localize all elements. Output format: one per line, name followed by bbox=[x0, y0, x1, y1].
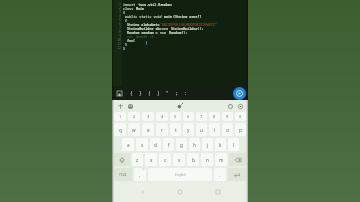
button[interactable]: Voice input bbox=[116, 102, 124, 110]
staticText: 3 bbox=[147, 114, 150, 119]
staticText: p bbox=[239, 127, 242, 133]
staticText: i bbox=[214, 127, 216, 133]
button[interactable]: ?123 bbox=[114, 168, 132, 181]
button[interactable]: : bbox=[181, 88, 190, 98]
staticText: { bbox=[125, 18, 128, 22]
button[interactable]: , bbox=[134, 168, 146, 181]
staticText: g bbox=[180, 142, 183, 148]
button[interactable]: e bbox=[142, 123, 154, 136]
button[interactable]: 3 bbox=[142, 112, 154, 121]
staticText: ; bbox=[175, 90, 178, 96]
button[interactable]: x bbox=[145, 153, 157, 166]
button[interactable]: 2 bbox=[128, 112, 140, 121]
button[interactable]: Enter bbox=[228, 168, 246, 181]
button[interactable]: h bbox=[189, 138, 200, 151]
staticText: Random(); bbox=[169, 30, 188, 34]
staticText: 4 bbox=[119, 14, 121, 18]
button[interactable]: . bbox=[214, 168, 226, 181]
staticText: 1 bbox=[119, 2, 121, 6]
staticText: r bbox=[161, 127, 163, 133]
button[interactable]: d bbox=[150, 138, 161, 151]
staticText: ☺ bbox=[142, 168, 145, 171]
button[interactable]: c bbox=[159, 153, 171, 166]
button[interactable]: } bbox=[136, 88, 145, 98]
staticText: ) bbox=[157, 90, 160, 96]
button[interactable]: q bbox=[114, 123, 126, 136]
button[interactable]: m bbox=[215, 153, 227, 166]
button[interactable]: { bbox=[127, 88, 136, 98]
button[interactable]: a bbox=[122, 138, 134, 151]
staticText: { bbox=[130, 90, 133, 96]
staticText: j bbox=[207, 142, 209, 148]
staticText: a bbox=[127, 142, 130, 148]
staticText: StringBuilder sb= bbox=[127, 26, 162, 30]
button[interactable]: k bbox=[215, 138, 226, 151]
button[interactable]: Run bbox=[233, 87, 246, 100]
staticText: main bbox=[164, 14, 173, 18]
button[interactable]: n bbox=[201, 153, 213, 166]
staticText: 4 bbox=[161, 114, 164, 119]
button[interactable]: 7 bbox=[196, 112, 207, 121]
button[interactable]: Backspace bbox=[229, 153, 246, 166]
staticText: 8 bbox=[213, 114, 216, 119]
button[interactable]: English bbox=[148, 168, 212, 181]
button[interactable]: ) bbox=[154, 88, 163, 98]
button[interactable]: Recents bbox=[211, 188, 225, 196]
button[interactable]: ; bbox=[172, 88, 181, 98]
button[interactable]: Save bbox=[115, 89, 123, 97]
staticText: for( bbox=[127, 38, 136, 42]
staticText: 9 bbox=[119, 34, 121, 38]
staticText: w bbox=[132, 127, 136, 133]
button[interactable]: s bbox=[136, 138, 148, 151]
button[interactable]: Back bbox=[136, 188, 150, 196]
button[interactable]: i bbox=[209, 123, 220, 136]
button[interactable]: r bbox=[156, 123, 168, 136]
staticText: 3 bbox=[119, 10, 121, 14]
button[interactable]: l bbox=[228, 138, 239, 151]
staticText: v bbox=[178, 157, 181, 163]
staticText: 1 bbox=[119, 114, 122, 119]
button[interactable]: o bbox=[222, 123, 233, 136]
staticText: } bbox=[125, 42, 128, 46]
button[interactable]: t bbox=[170, 123, 181, 136]
button[interactable]: Settings bbox=[236, 102, 244, 110]
staticText: 10 bbox=[117, 38, 121, 42]
button[interactable]: " bbox=[163, 88, 172, 98]
staticText: k bbox=[219, 142, 222, 148]
staticText: : bbox=[184, 90, 187, 96]
button[interactable]: u bbox=[196, 123, 207, 136]
staticText: new bbox=[160, 30, 169, 34]
button[interactable]: 9 bbox=[222, 112, 233, 121]
button[interactable]: b bbox=[187, 153, 199, 166]
staticText: { bbox=[123, 10, 126, 14]
button[interactable]: w bbox=[128, 123, 140, 136]
button[interactable]: p bbox=[235, 123, 246, 136]
button[interactable]: g bbox=[176, 138, 187, 151]
button[interactable]: f bbox=[163, 138, 174, 151]
staticText: public static void bbox=[125, 14, 164, 18]
button[interactable]: 0 bbox=[235, 112, 246, 121]
staticText: 12 bbox=[117, 46, 121, 50]
button[interactable]: Home bbox=[173, 188, 187, 196]
button[interactable]: ( bbox=[145, 88, 154, 98]
button[interactable]: y bbox=[183, 123, 194, 136]
button[interactable]: 4 bbox=[156, 112, 168, 121]
button[interactable]: Clipboard bbox=[175, 101, 184, 110]
button[interactable]: Stickers bbox=[126, 102, 134, 110]
button[interactable]: 1 bbox=[114, 112, 126, 121]
staticText: 6 bbox=[187, 114, 190, 119]
button[interactable]: 5 bbox=[170, 112, 181, 121]
button[interactable]: v bbox=[173, 153, 185, 166]
staticText: new bbox=[162, 26, 171, 30]
staticText: 5 bbox=[119, 18, 121, 22]
staticText: d bbox=[154, 142, 157, 148]
button[interactable]: z bbox=[132, 153, 143, 166]
staticText: "ABCDEFGHIJKLMNOPQRSTUVWXYZ" bbox=[160, 22, 217, 26]
button[interactable]: 6 bbox=[183, 112, 194, 121]
button[interactable]: 8 bbox=[209, 112, 220, 121]
button[interactable]: Shift bbox=[114, 153, 130, 166]
staticText: English bbox=[175, 173, 186, 177]
button[interactable]: j bbox=[202, 138, 213, 151]
staticText: . bbox=[219, 172, 221, 178]
button[interactable]: Theme bbox=[226, 102, 234, 110]
